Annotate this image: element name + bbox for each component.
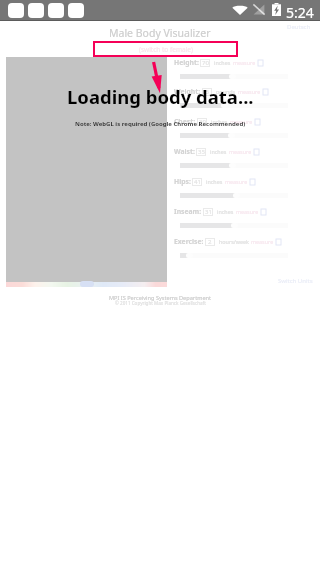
staticText: Chest: bbox=[174, 117, 196, 126]
button[interactable] bbox=[180, 74, 288, 79]
staticText: inches bbox=[214, 59, 231, 66]
staticText: measure bbox=[251, 238, 274, 245]
staticText: measure bbox=[229, 148, 252, 155]
button[interactable] bbox=[180, 163, 288, 168]
staticText: hours/week bbox=[219, 238, 249, 245]
staticText: 5:24 bbox=[286, 3, 314, 22]
staticText: 31 bbox=[205, 208, 212, 216]
staticText: 150 bbox=[202, 88, 212, 96]
button[interactable]: (switch to female) bbox=[93, 41, 238, 57]
staticText: Weight: bbox=[174, 87, 201, 96]
button[interactable] bbox=[180, 253, 288, 258]
staticText: inches bbox=[206, 178, 223, 185]
staticText: Height: bbox=[174, 58, 199, 67]
staticText: © 2011 Copyright Max Planck Gesellschaft bbox=[115, 300, 206, 306]
staticText: measure bbox=[225, 178, 248, 185]
staticText: Inseam: bbox=[174, 207, 202, 216]
staticText: Exercise: bbox=[174, 237, 204, 246]
staticText: (switch to female) bbox=[139, 45, 193, 54]
staticText: Waist: bbox=[174, 147, 195, 156]
staticText: inches bbox=[211, 118, 228, 125]
staticText: Note: WebGL is required (Google Chrome R… bbox=[75, 120, 246, 128]
staticText: MPI IS Perceiving Systems Department bbox=[109, 294, 212, 302]
button[interactable] bbox=[180, 133, 288, 138]
staticText: inches bbox=[217, 208, 234, 215]
staticText: measure bbox=[236, 208, 259, 215]
staticText: inches bbox=[210, 148, 227, 155]
staticText: measure bbox=[233, 59, 256, 66]
staticText: measure bbox=[238, 88, 261, 95]
staticText: 35 bbox=[198, 148, 205, 156]
staticText: Loading body data... bbox=[67, 84, 254, 109]
button[interactable] bbox=[180, 103, 288, 108]
staticText: 2 bbox=[208, 238, 212, 246]
button[interactable]: Switch Units bbox=[278, 277, 313, 285]
staticText: pounds bbox=[216, 88, 236, 95]
other: Pointer bbox=[148, 58, 166, 96]
button[interactable] bbox=[180, 223, 288, 228]
staticText: Male Body Visualizer bbox=[109, 26, 211, 40]
staticText: measure bbox=[230, 118, 253, 125]
staticText: 39 bbox=[199, 118, 206, 126]
button[interactable] bbox=[180, 193, 288, 198]
staticText: 41 bbox=[194, 178, 201, 186]
staticText: Hips: bbox=[174, 177, 191, 186]
staticText: 70 bbox=[202, 59, 209, 67]
button[interactable]: Deutsch bbox=[287, 23, 311, 31]
